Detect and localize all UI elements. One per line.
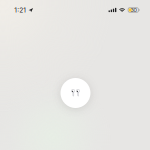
staticText: 30 bbox=[130, 7, 136, 13]
staticText: 1:21 bbox=[14, 6, 26, 14]
button[interactable]: AirPods bbox=[60, 78, 90, 108]
